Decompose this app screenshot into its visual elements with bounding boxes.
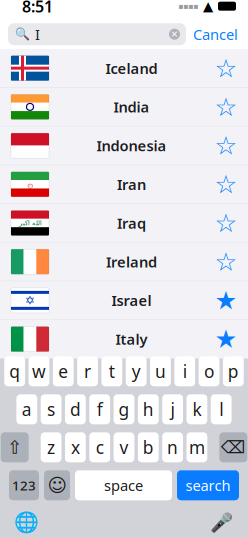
button[interactable]: Iceland — [0, 49, 248, 88]
staticText: Iceland — [105, 58, 157, 78]
button[interactable]: i — [174, 356, 195, 386]
staticText: ▪▪▪▪ — [178, 2, 198, 11]
button[interactable]: space — [75, 470, 172, 500]
staticText: 8:51 — [22, 0, 53, 17]
staticText: ✡ — [25, 294, 35, 307]
button[interactable]: Clear text — [169, 29, 180, 40]
staticText: 🔍 — [15, 27, 30, 41]
button[interactable]: Switch keyboard — [12, 509, 42, 535]
staticText: ✕ — [170, 29, 178, 39]
button[interactable]: Ireland — [0, 243, 248, 281]
button[interactable]: Emoji — [44, 470, 70, 500]
button[interactable]: q — [4, 356, 25, 386]
button[interactable]: Delete — [219, 432, 247, 462]
staticText: s — [47, 398, 55, 421]
button[interactable]: Shift — [1, 432, 29, 462]
button[interactable]: k — [186, 394, 207, 424]
staticText: India — [113, 97, 149, 117]
button[interactable]: ✡ — [0, 281, 248, 320]
staticText: m — [189, 436, 205, 459]
staticText: ☆ — [214, 209, 237, 237]
button[interactable]: l — [211, 394, 232, 424]
button[interactable]: u — [150, 356, 171, 386]
staticText: x — [71, 436, 80, 459]
staticText: e — [58, 360, 68, 383]
button[interactable]: 123 — [9, 470, 39, 500]
staticText: ★ — [214, 286, 237, 315]
staticText: Israel — [111, 291, 151, 310]
staticText: I — [35, 24, 40, 44]
staticText: a — [22, 398, 32, 421]
staticText: k — [192, 398, 201, 421]
button[interactable]: Cancel — [186, 23, 245, 45]
button[interactable]: g — [114, 394, 134, 424]
staticText: Indonesia — [96, 136, 166, 155]
staticText: u — [155, 360, 166, 383]
staticText: Iran — [117, 175, 146, 194]
button[interactable]: m — [186, 432, 207, 462]
staticText: ⌫ — [221, 437, 246, 457]
button[interactable]: o — [199, 356, 219, 386]
staticText: ☺ — [47, 475, 66, 496]
staticText: Italy — [115, 329, 147, 349]
staticText: ☆ — [214, 54, 237, 83]
staticText: v — [119, 436, 128, 459]
staticText: ☆ — [214, 92, 237, 121]
button[interactable]: x — [65, 432, 86, 462]
staticText: h — [143, 398, 154, 421]
staticText: j — [171, 398, 175, 421]
button[interactable]: الله اكبر — [0, 204, 248, 243]
staticText: r — [84, 360, 91, 383]
button[interactable]: t — [101, 356, 122, 386]
staticText: space — [104, 476, 143, 495]
staticText: ☆ — [214, 131, 237, 160]
button[interactable]: j — [162, 394, 183, 424]
button[interactable]: p — [223, 356, 244, 386]
staticText: ☆ — [214, 170, 237, 199]
button[interactable]: z — [41, 432, 61, 462]
button[interactable]: a — [16, 394, 37, 424]
staticText: 🎤 — [210, 512, 233, 533]
staticText: c — [96, 436, 104, 459]
staticText: g — [118, 398, 129, 421]
button[interactable]: f — [89, 394, 110, 424]
button[interactable]: b — [138, 432, 159, 462]
staticText: p — [228, 360, 239, 383]
button[interactable]: s — [41, 394, 61, 424]
staticText: q — [9, 360, 20, 383]
staticText: ⇧ — [7, 437, 23, 458]
staticText: Ireland — [106, 252, 157, 271]
button[interactable]: ۞ — [0, 165, 248, 204]
button[interactable]: c — [89, 432, 110, 462]
button[interactable]: Indonesia — [0, 127, 248, 165]
staticText: 123 — [12, 476, 36, 494]
button[interactable]: w — [28, 356, 49, 386]
button[interactable]: n — [162, 432, 183, 462]
button[interactable]: r — [77, 356, 98, 386]
staticText: f — [97, 398, 103, 421]
staticText: i — [183, 360, 187, 383]
button[interactable]: Dictation — [206, 509, 236, 535]
staticText: Iraq — [117, 213, 146, 233]
button[interactable]: e — [53, 356, 74, 386]
staticText: n — [167, 436, 178, 459]
button[interactable]: y — [126, 356, 146, 386]
staticText: ۞ — [27, 178, 33, 190]
button[interactable]: search — [177, 470, 239, 500]
staticText: ▲ — [203, 0, 213, 14]
staticText: t — [109, 360, 115, 383]
button[interactable]: India — [0, 88, 248, 127]
staticText: y — [132, 360, 141, 383]
staticText: z — [47, 436, 55, 459]
staticText: o — [204, 360, 214, 383]
staticText: ☆ — [214, 247, 237, 276]
button[interactable]: d — [65, 394, 86, 424]
staticText: l — [219, 398, 223, 421]
button[interactable]: Italy — [0, 320, 248, 359]
button[interactable]: v — [114, 432, 134, 462]
staticText: Cancel — [193, 24, 238, 44]
staticText: b — [143, 436, 154, 459]
button[interactable]: h — [138, 394, 159, 424]
staticText: w — [32, 360, 46, 383]
staticText: search — [185, 476, 230, 495]
